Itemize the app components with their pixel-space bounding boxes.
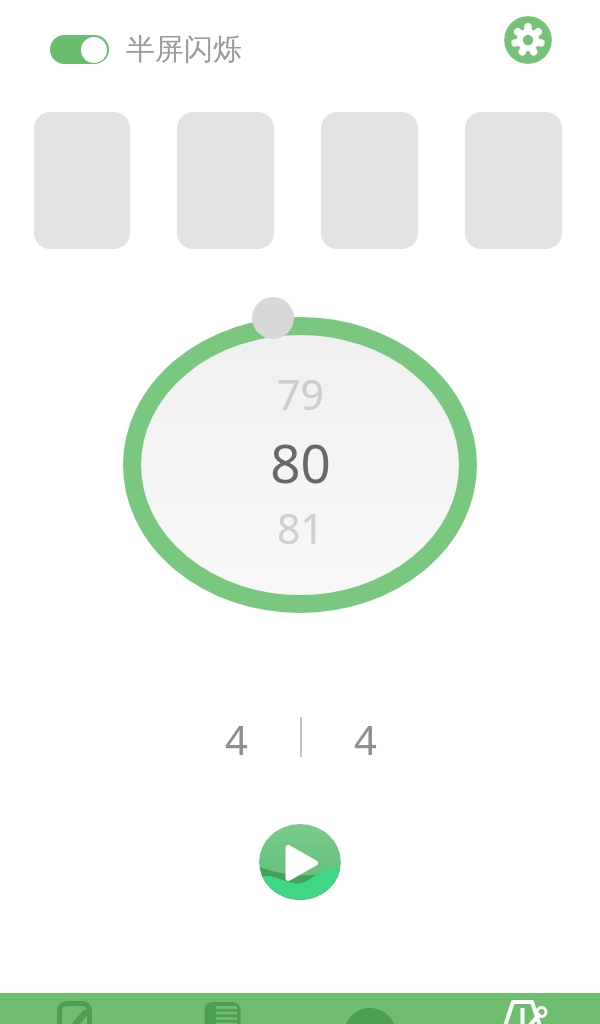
button[interactable] bbox=[204, 1001, 242, 1024]
button[interactable] bbox=[57, 1001, 93, 1024]
staticText: 80 bbox=[270, 426, 331, 498]
button[interactable]: 4 bbox=[200, 712, 272, 762]
button[interactable] bbox=[321, 112, 418, 249]
button[interactable] bbox=[259, 824, 341, 900]
staticText: 半屏闪烁 bbox=[126, 31, 242, 68]
button[interactable] bbox=[177, 112, 274, 249]
button[interactable] bbox=[504, 16, 552, 64]
button[interactable] bbox=[34, 112, 130, 249]
staticText: 79 bbox=[277, 366, 324, 422]
staticText: 4 bbox=[354, 712, 377, 762]
staticText: 81 bbox=[277, 500, 324, 556]
button[interactable] bbox=[50, 35, 109, 64]
button[interactable] bbox=[498, 998, 550, 1024]
staticText: 4 bbox=[225, 712, 248, 762]
button[interactable] bbox=[347, 1001, 393, 1024]
button[interactable] bbox=[465, 112, 562, 249]
button[interactable]: 4 bbox=[329, 712, 401, 762]
